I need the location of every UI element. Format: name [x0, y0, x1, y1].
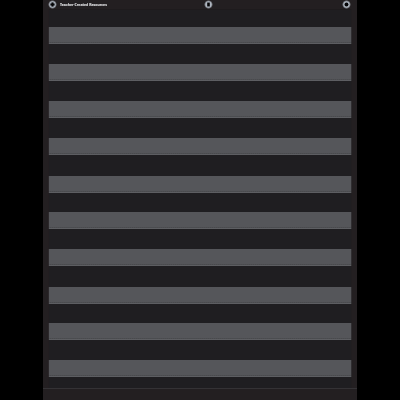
- button[interactable]: Hanging grommet right: [342, 0, 351, 9]
- button[interactable]: Teacher Created Resources logo: [48, 0, 57, 9]
- staticText: Teacher Created Resources: [60, 2, 107, 7]
- button[interactable]: Teacher Created Resources logo: [0, 0, 400, 400]
- button[interactable]: Hanging grommet centre: [204, 0, 213, 9]
